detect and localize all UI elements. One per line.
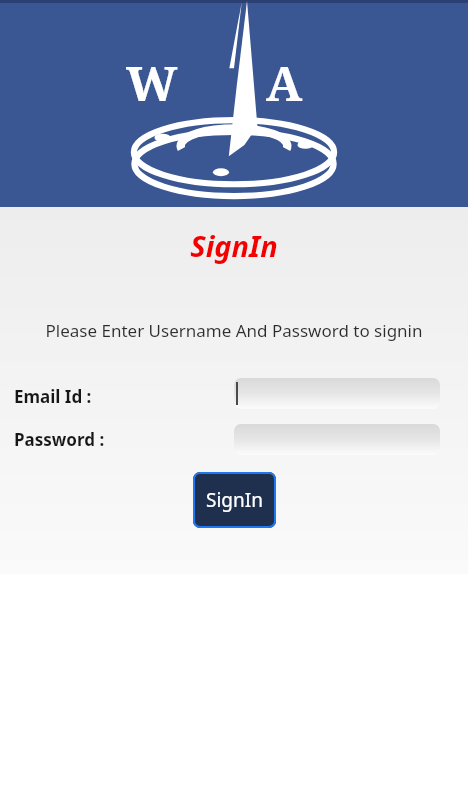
staticText: Email Id : bbox=[14, 385, 92, 408]
button[interactable]: SignIn bbox=[193, 472, 276, 528]
staticText: A bbox=[266, 50, 303, 115]
staticText: SignIn bbox=[206, 487, 263, 513]
staticText: W bbox=[126, 50, 178, 115]
staticText: Password : bbox=[14, 428, 105, 451]
staticText: SignIn bbox=[0, 226, 468, 265]
staticText: Please Enter Username And Password to si… bbox=[0, 319, 468, 342]
button[interactable]: Email Id input bbox=[234, 378, 440, 409]
button[interactable]: Password input bbox=[234, 424, 440, 455]
